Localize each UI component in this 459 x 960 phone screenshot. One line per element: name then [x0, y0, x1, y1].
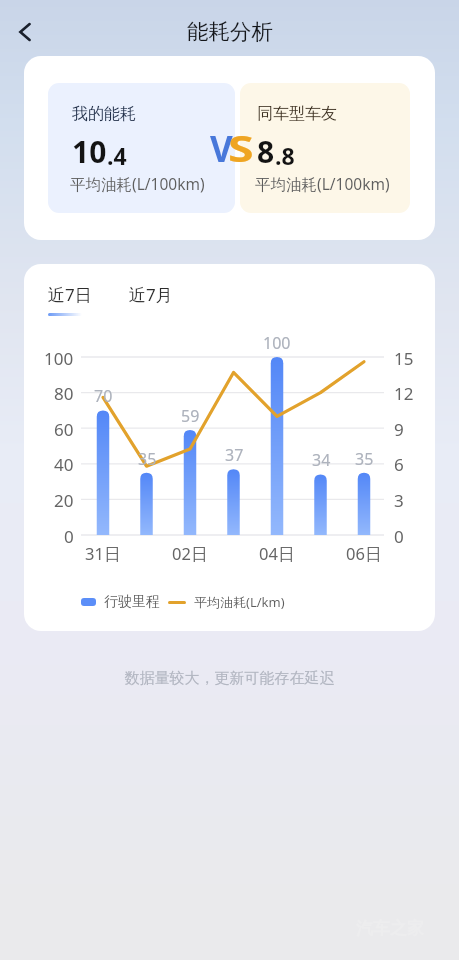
- staticText: 100: [44, 347, 74, 370]
- staticText: 我的能耗: [72, 104, 136, 124]
- staticText: 数据量较大，更新可能存在延迟: [0, 669, 459, 688]
- staticText: 12: [394, 382, 414, 405]
- staticText: 40: [54, 453, 74, 476]
- staticText: 0: [394, 525, 404, 548]
- staticText: 10: [72, 131, 107, 172]
- staticText: 能耗分析: [187, 18, 273, 45]
- staticText: 02日: [172, 542, 208, 565]
- staticText: 行驶里程: [104, 593, 160, 611]
- staticText: V: [210, 125, 233, 173]
- button[interactable]: Back: [3, 10, 47, 54]
- staticText: S: [228, 125, 255, 173]
- staticText: 同车型车友: [257, 104, 337, 124]
- staticText: 8: [257, 131, 275, 172]
- staticText: 34: [312, 449, 331, 471]
- staticText: 平均油耗(L/100km): [70, 173, 205, 194]
- staticText: .8: [275, 140, 295, 171]
- staticText: 37: [225, 444, 244, 466]
- staticText: 31日: [85, 542, 121, 565]
- staticText: 59: [181, 405, 200, 427]
- staticText: 0: [64, 525, 74, 548]
- staticText: 100: [263, 332, 291, 354]
- staticText: 06日: [346, 542, 382, 565]
- staticText: 60: [54, 418, 74, 441]
- staticText: 近7日: [48, 283, 92, 306]
- button[interactable]: 近7月: [121, 275, 181, 314]
- staticText: 平均油耗(L/100km): [255, 173, 390, 194]
- button[interactable]: 近7日: [40, 275, 100, 314]
- staticText: 9: [394, 418, 404, 441]
- staticText: 平均油耗(L/km): [194, 593, 285, 611]
- staticText: 04日: [259, 542, 295, 565]
- staticText: 近7月: [129, 283, 173, 306]
- staticText: 35: [355, 448, 374, 470]
- staticText: 3: [394, 489, 404, 512]
- staticText: 35: [138, 448, 157, 470]
- staticText: 80: [54, 382, 74, 405]
- staticText: 15: [394, 347, 414, 370]
- staticText: 6: [394, 453, 404, 476]
- staticText: .4: [107, 140, 127, 171]
- staticText: 20: [54, 489, 74, 512]
- staticText: 70: [94, 385, 113, 407]
